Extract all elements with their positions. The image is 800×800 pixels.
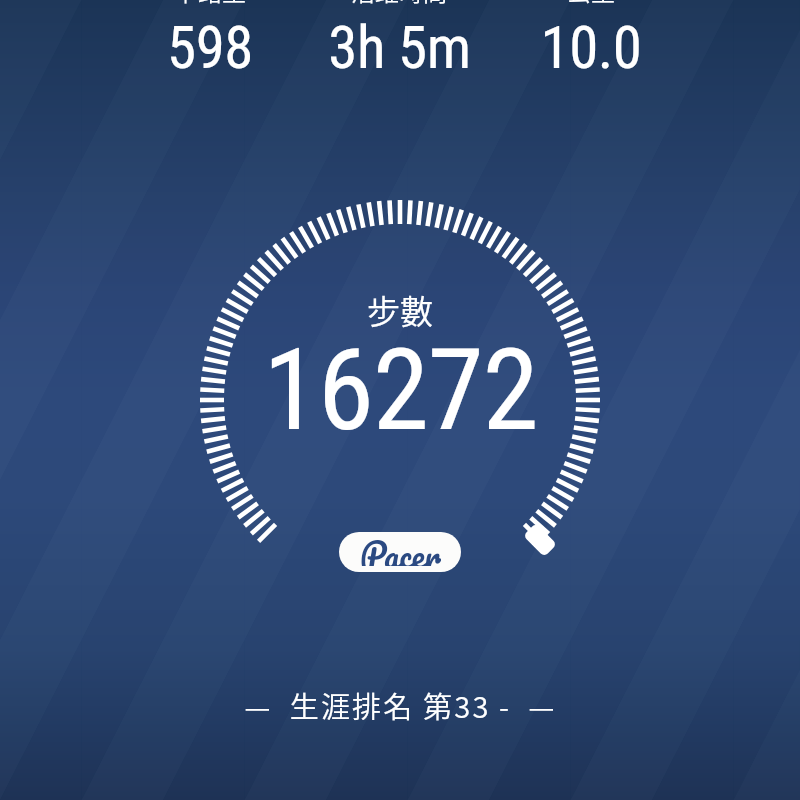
staticText: — 生涯排名 第33 - — (244, 684, 557, 726)
button[interactable]: Pacer (339, 532, 461, 572)
staticText: Pacer (360, 532, 441, 566)
staticText: 3h 5m (328, 13, 471, 82)
button[interactable]: 活躍時間 (299, 0, 499, 74)
staticText: 16272 (263, 323, 538, 457)
staticText: 活躍時間 (351, 0, 447, 8)
staticText: 卡路里 (174, 0, 246, 8)
staticText: 10.0 (540, 13, 642, 82)
staticText: 598 (167, 13, 253, 82)
staticText: 步數 (367, 286, 433, 334)
button[interactable]: 卡路里 (110, 0, 310, 74)
button[interactable]: 公里 (491, 0, 691, 74)
staticText: 公里 (567, 0, 615, 8)
